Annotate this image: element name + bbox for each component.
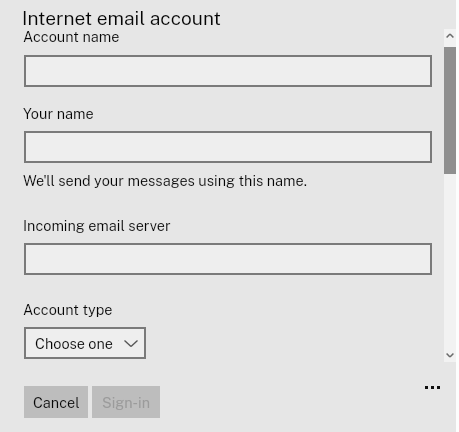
button[interactable]: More options	[419, 377, 445, 397]
staticText: Internet email account	[22, 7, 221, 29]
staticText: Account type	[23, 301, 113, 318]
staticText: Incoming email server	[23, 217, 171, 234]
button[interactable]: Scroll up	[444, 29, 456, 46]
staticText: Account name	[23, 28, 120, 45]
staticText: Sign-in	[102, 394, 150, 411]
staticText: We'll send your messages using this name…	[23, 172, 307, 189]
button[interactable]: Your name	[24, 131, 432, 163]
button[interactable]: Choose one	[24, 327, 146, 359]
staticText: Cancel	[33, 394, 80, 411]
button[interactable]: Sign-in	[92, 386, 160, 418]
button[interactable]: Cancel	[24, 386, 88, 418]
staticText: Your name	[23, 105, 94, 122]
button[interactable]: Incoming email server	[24, 243, 432, 275]
staticText: Choose one	[35, 335, 113, 352]
button[interactable]: Scroll down	[444, 345, 456, 362]
button[interactable]: Account name	[24, 55, 432, 87]
